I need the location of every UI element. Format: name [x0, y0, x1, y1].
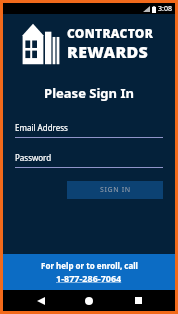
- staticText: For help or to enroll, call: [41, 260, 138, 271]
- staticText: Password: [15, 152, 52, 163]
- staticText: CONTRACTOR: [67, 25, 154, 41]
- button[interactable]: Password: [15, 152, 163, 168]
- button[interactable]: Recent apps: [127, 290, 149, 311]
- staticText: SIGN IN: [100, 185, 131, 195]
- button[interactable]: SIGN IN: [67, 181, 163, 199]
- button[interactable]: Email Address: [15, 122, 163, 138]
- staticText: 3:08: [158, 4, 172, 14]
- button[interactable]: For help or to enroll, call: [3, 254, 175, 290]
- staticText: Please Sign In: [3, 84, 175, 102]
- staticText: REWARDS: [67, 41, 149, 63]
- staticText: Email Address: [15, 122, 68, 133]
- staticText: 1-877-286-7064: [56, 272, 122, 284]
- button[interactable]: Back: [30, 290, 52, 311]
- button[interactable]: Home: [78, 290, 100, 311]
